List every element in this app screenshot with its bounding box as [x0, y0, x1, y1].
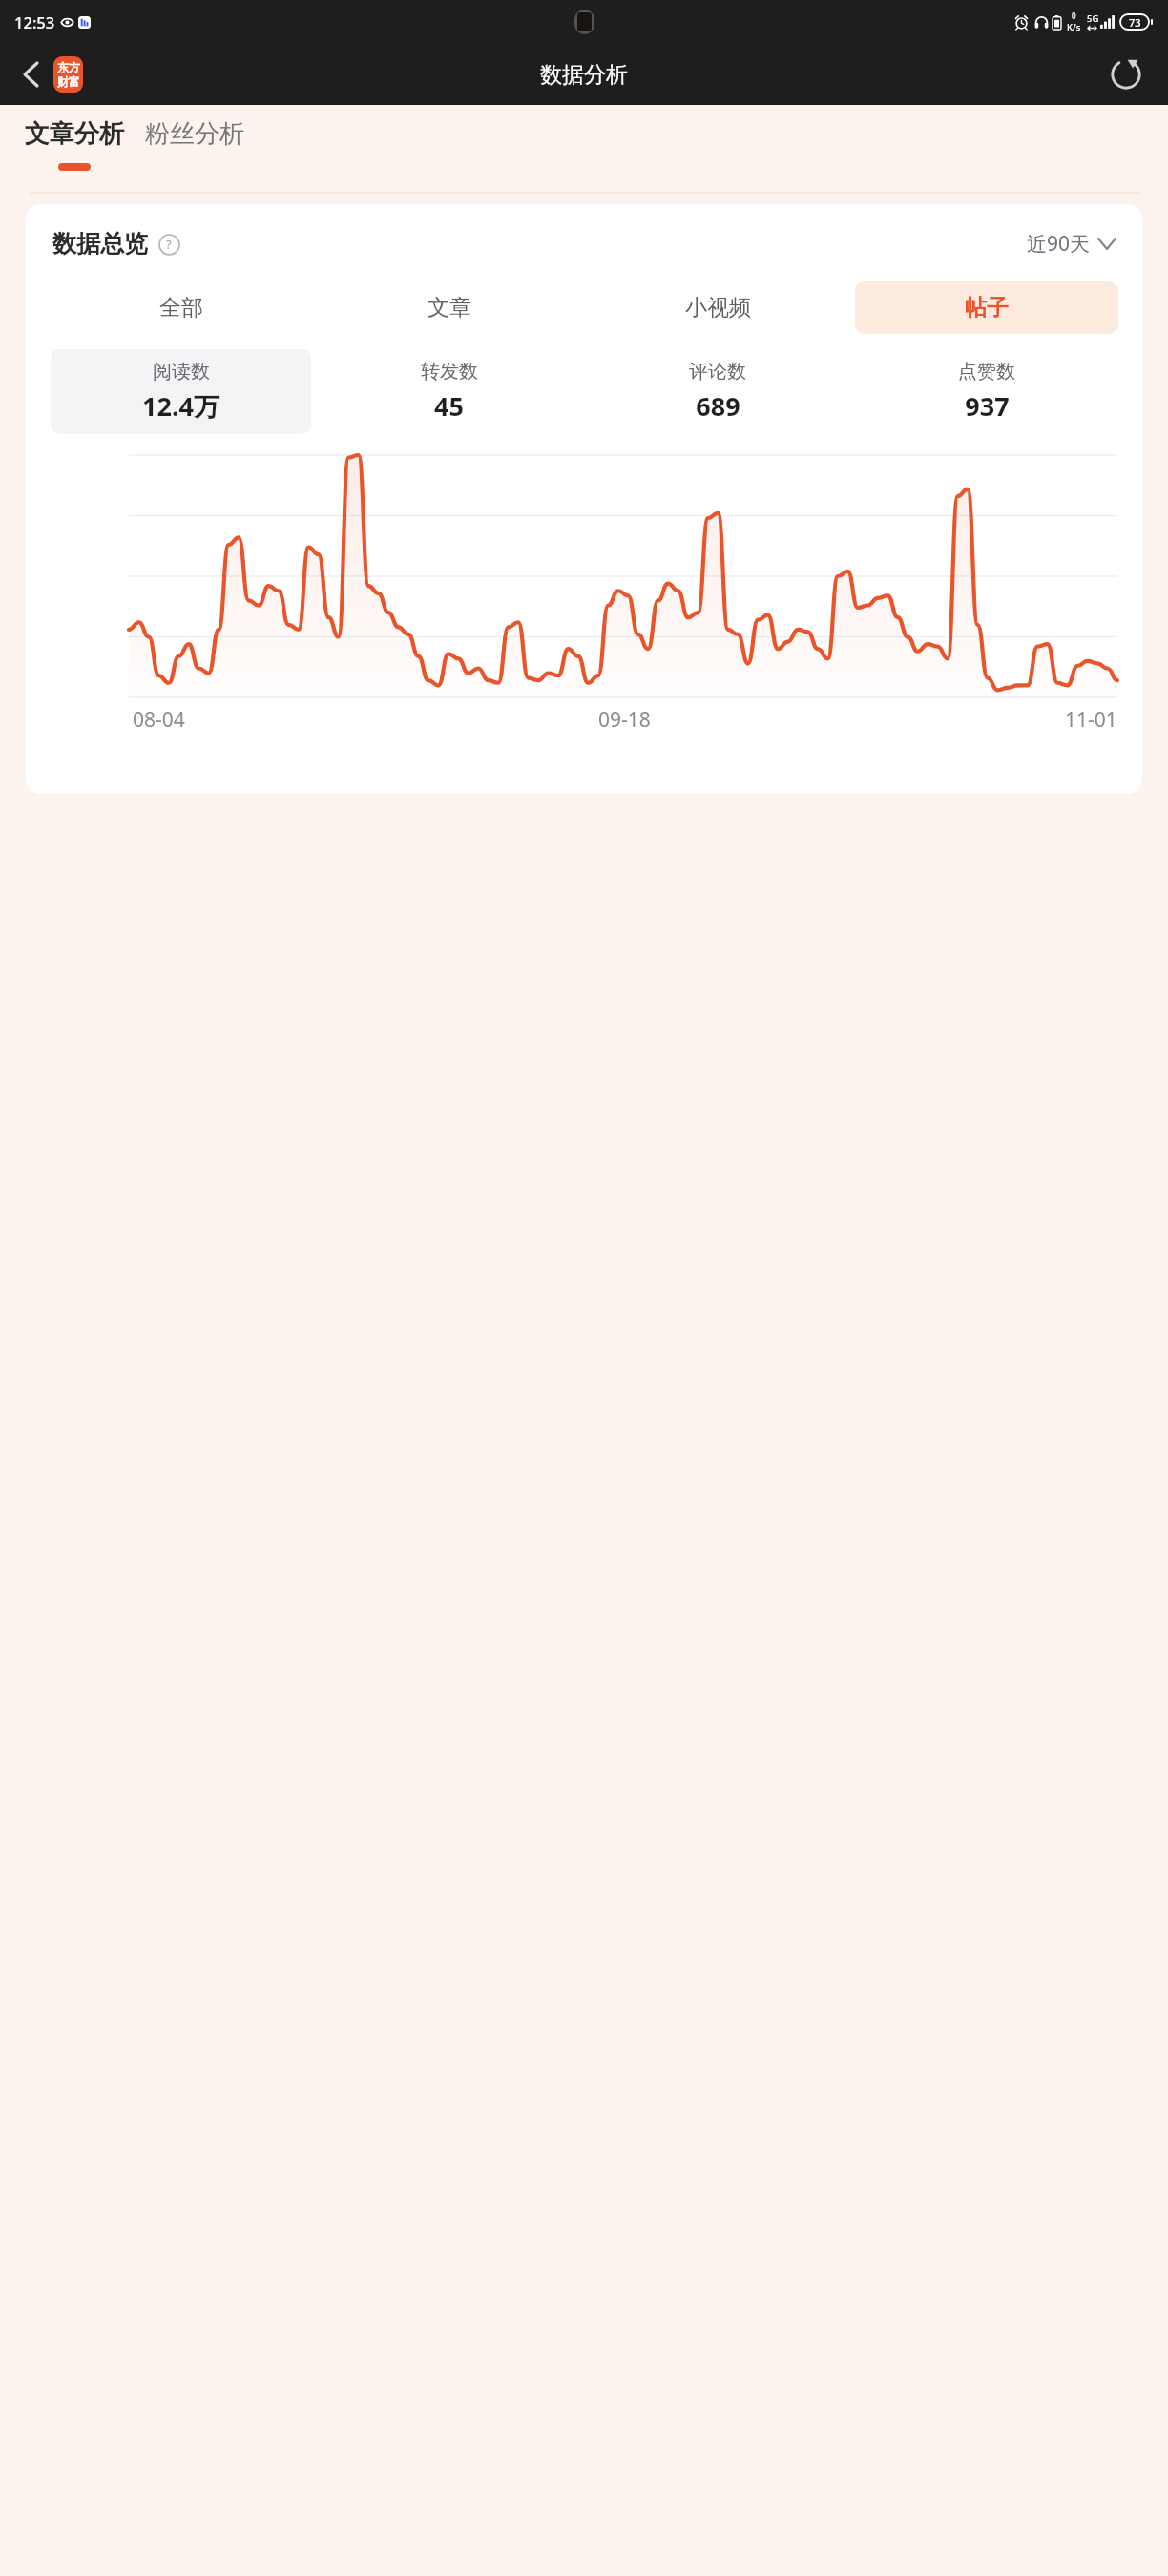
staticText: 数据总览	[52, 229, 148, 259]
staticText: 11-01	[1065, 706, 1117, 734]
button[interactable]: 转发数	[319, 349, 579, 434]
staticText: 文章分析	[25, 118, 124, 150]
staticText: K/s	[1067, 21, 1081, 33]
button[interactable]: Help	[157, 233, 180, 256]
staticText: ?	[166, 236, 172, 253]
button[interactable]: Back	[10, 53, 52, 95]
button[interactable]: 评论数	[587, 349, 848, 434]
staticText: 689	[696, 388, 740, 424]
staticText: 粉丝分析	[145, 118, 244, 150]
staticText: 文章	[428, 294, 471, 322]
staticText: 财富	[57, 74, 80, 89]
staticText: 转发数	[421, 360, 478, 384]
staticText: 08-04	[133, 706, 185, 734]
staticText: 帖子	[965, 294, 1009, 322]
staticText: 45	[434, 388, 464, 424]
staticText: 全部	[159, 294, 203, 322]
staticText: 12:53	[14, 11, 55, 32]
button[interactable]: 东方财富	[53, 56, 83, 93]
staticText: 数据分析	[540, 61, 628, 89]
staticText: 评论数	[689, 360, 746, 384]
button[interactable]: 帖子	[855, 281, 1118, 334]
button[interactable]: 点赞数	[856, 349, 1117, 434]
staticText: 73	[1129, 15, 1141, 30]
button[interactable]: 文章	[318, 281, 580, 334]
staticText: 09-18	[598, 706, 651, 734]
staticText: 近90天	[1027, 230, 1091, 258]
staticText: 937	[965, 388, 1010, 424]
button[interactable]: 阅读数	[51, 349, 311, 434]
button[interactable]: 近90天	[1027, 230, 1116, 258]
staticText: 0	[1072, 10, 1076, 21]
button[interactable]: Refresh	[1101, 50, 1151, 99]
button[interactable]: 全部	[50, 281, 312, 334]
staticText: 点赞数	[958, 360, 1015, 384]
button[interactable]: 粉丝分析	[145, 118, 244, 150]
staticText: 阅读数	[153, 360, 210, 384]
button[interactable]: 文章分析	[25, 118, 124, 171]
button[interactable]: 小视频	[586, 281, 849, 334]
staticText: 12.4万	[142, 388, 219, 424]
staticText: 小视频	[685, 294, 751, 322]
staticText: 5G	[1087, 12, 1099, 25]
staticText: 东方	[57, 60, 80, 74]
